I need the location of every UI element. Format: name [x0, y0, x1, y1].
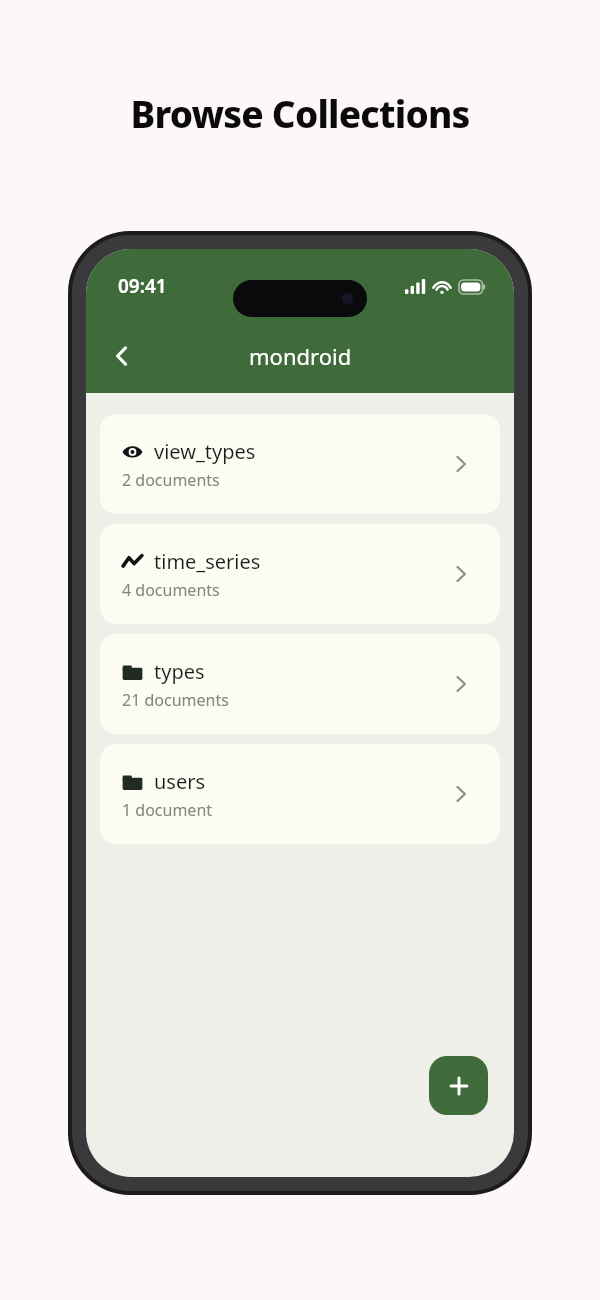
- staticText: 4 documents: [122, 579, 220, 601]
- staticText: 09:41: [118, 273, 167, 299]
- button[interactable]: time_series: [100, 524, 500, 624]
- staticText: users: [154, 768, 206, 795]
- staticText: view_types: [154, 438, 256, 465]
- button[interactable]: users: [100, 744, 500, 844]
- button[interactable]: Back: [98, 332, 146, 380]
- staticText: time_series: [154, 548, 261, 575]
- button[interactable]: view_types: [100, 414, 500, 514]
- staticText: Browse Collections: [130, 88, 470, 138]
- staticText: 2 documents: [122, 469, 220, 491]
- staticText: 21 documents: [122, 689, 229, 711]
- button[interactable]: Add collection: [429, 1056, 488, 1115]
- staticText: types: [154, 658, 205, 685]
- staticText: mondroid: [249, 341, 352, 371]
- button[interactable]: types: [100, 634, 500, 734]
- staticText: 1 document: [122, 799, 213, 821]
